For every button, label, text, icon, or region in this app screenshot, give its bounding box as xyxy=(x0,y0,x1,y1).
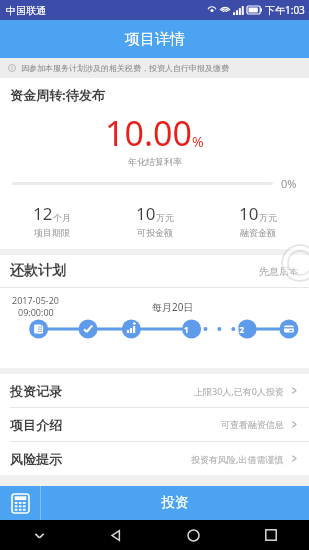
staticText: % xyxy=(192,132,204,151)
staticText: 因参加本服务计划涉及的相关税费，投资人自行申报及缴费 xyxy=(21,63,229,73)
staticText: 下午1:03 xyxy=(265,3,305,17)
button[interactable]: 投资记录 xyxy=(0,374,309,407)
staticText: 个月 xyxy=(53,212,71,223)
staticText: 项目详情 xyxy=(125,30,185,49)
button[interactable]: Calculator xyxy=(0,486,40,520)
staticText: 2017-05-20 xyxy=(12,294,59,306)
staticText: 年化结算利率 xyxy=(128,156,182,167)
staticText: 融资金额 xyxy=(240,227,276,238)
staticText: 万元 xyxy=(156,212,174,223)
button[interactable]: 投资 xyxy=(41,486,309,520)
staticText: 0% xyxy=(281,176,297,191)
staticText: 投资记录 xyxy=(10,383,62,399)
staticText: 09:00:00 xyxy=(18,306,54,318)
staticText: 12 xyxy=(235,324,245,335)
staticText: 还款计划 xyxy=(10,262,66,280)
staticText: 资金周转:待发布 xyxy=(10,86,105,104)
staticText: 项目介绍 xyxy=(10,417,62,433)
staticText: 每月20日 xyxy=(152,300,194,314)
staticText: 1 xyxy=(184,324,189,335)
button[interactable]: Home xyxy=(155,520,232,550)
button[interactable]: Back xyxy=(78,520,155,550)
button[interactable]: 风险提示 xyxy=(0,442,309,475)
staticText: 投资有风险,出借需谨慎 xyxy=(191,453,284,465)
staticText: 先息后本 xyxy=(259,265,299,278)
staticText: 10.00 xyxy=(105,110,192,156)
staticText: 风险提示 xyxy=(10,451,62,467)
staticText: 上限30人,已有0人投资 xyxy=(194,385,284,397)
staticText: 项目期限 xyxy=(34,227,70,238)
button[interactable]: 项目介绍 xyxy=(0,408,309,441)
staticText: 10 xyxy=(136,202,156,225)
button[interactable]: Calendar reminder xyxy=(281,244,309,282)
staticText: 投资 xyxy=(161,494,189,512)
staticText: 12 xyxy=(33,202,53,225)
staticText: 万元 xyxy=(259,212,277,223)
button[interactable]: Recent apps xyxy=(232,520,309,550)
staticText: 10 xyxy=(239,202,259,225)
button[interactable]: Hide keyboard xyxy=(0,520,78,550)
staticText: 可投金额 xyxy=(137,227,173,238)
staticText: 可查看融资信息 xyxy=(221,419,284,430)
staticText: 中国联通 xyxy=(6,4,46,17)
